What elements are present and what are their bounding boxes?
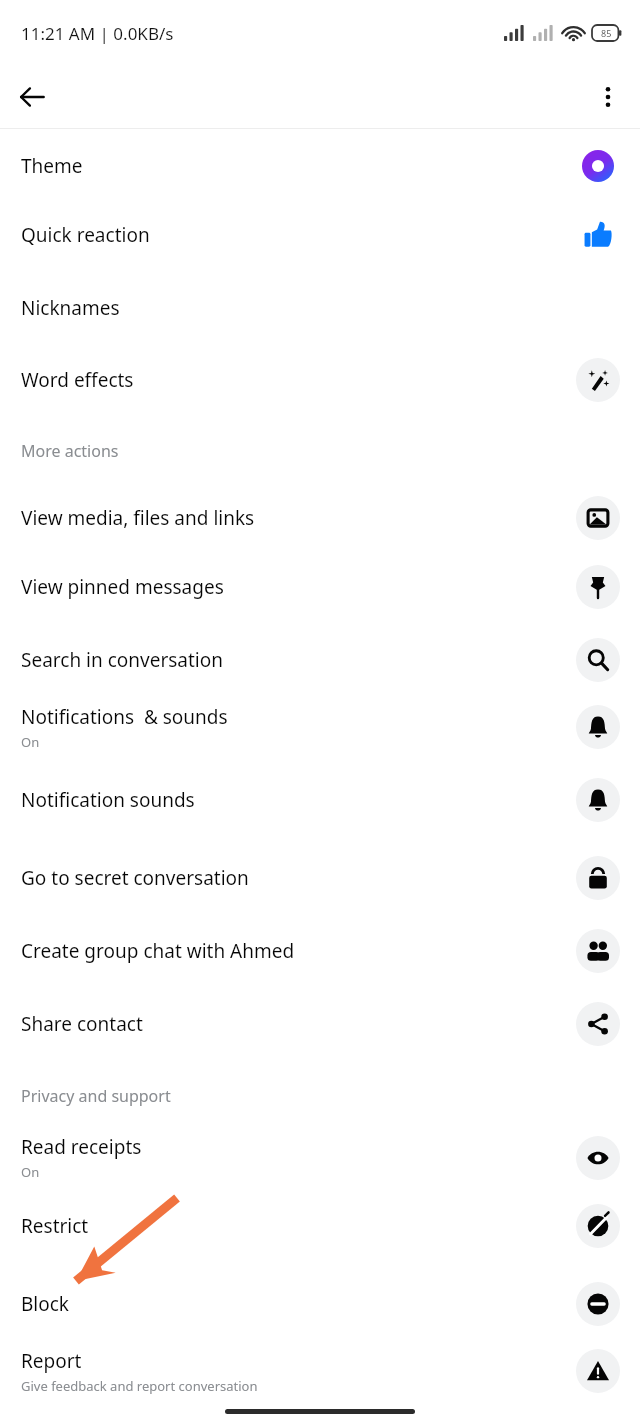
- button[interactable]: Quick reaction: [0, 198, 640, 271]
- button[interactable]: More options: [582, 71, 634, 123]
- staticText: View pinned messages: [21, 574, 224, 600]
- button[interactable]: Theme: [0, 129, 640, 198]
- button[interactable]: View pinned messages: [0, 550, 640, 623]
- staticText: Quick reaction: [21, 222, 150, 248]
- button[interactable]: Block: [0, 1267, 640, 1340]
- staticText: Nicknames: [21, 295, 120, 321]
- staticText: Create group chat with Ahmed: [21, 938, 295, 964]
- button[interactable]: Read receipts: [0, 1131, 640, 1184]
- button[interactable]: Notifications & sounds: [0, 696, 640, 758]
- staticText: Theme: [21, 153, 83, 179]
- button[interactable]: Nicknames: [0, 271, 640, 344]
- staticText: On: [21, 733, 40, 751]
- button[interactable]: Go to secret conversation: [0, 841, 640, 914]
- button[interactable]: Share contact: [0, 987, 640, 1060]
- staticText: On: [21, 1163, 40, 1181]
- staticText: Read receipts: [21, 1134, 142, 1160]
- button[interactable]: Back: [6, 71, 58, 123]
- staticText: Report: [21, 1348, 82, 1374]
- button[interactable]: View media, files and links: [0, 486, 640, 550]
- staticText: Privacy and support: [21, 1085, 171, 1107]
- staticText: 11:21 AM | 0.0KB/s: [21, 22, 174, 45]
- button[interactable]: Report: [0, 1340, 640, 1402]
- button[interactable]: Word effects: [0, 344, 640, 415]
- button[interactable]: Search in conversation: [0, 623, 640, 696]
- staticText: Word effects: [21, 367, 134, 393]
- staticText: Block: [21, 1291, 70, 1317]
- staticText: More actions: [21, 440, 119, 462]
- staticText: Give feedback and report conversation: [21, 1377, 258, 1395]
- staticText: Share contact: [21, 1011, 143, 1037]
- staticText: Notification sounds: [21, 787, 195, 813]
- staticText: Notifications & sounds: [21, 704, 228, 730]
- staticText: Search in conversation: [21, 647, 223, 673]
- staticText: View media, files and links: [21, 505, 255, 531]
- button[interactable]: Restrict: [0, 1184, 640, 1267]
- button[interactable]: Create group chat with Ahmed: [0, 914, 640, 987]
- button[interactable]: Notification sounds: [0, 758, 640, 841]
- staticText: 85: [601, 27, 612, 39]
- staticText: Restrict: [21, 1213, 89, 1239]
- staticText: Go to secret conversation: [21, 865, 249, 891]
